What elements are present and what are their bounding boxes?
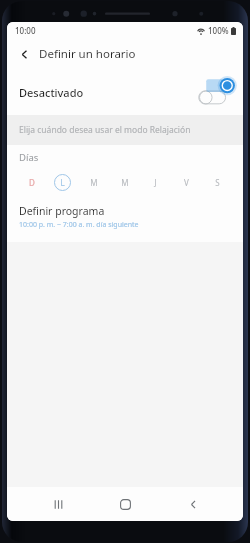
staticText: 10:00 p. m. ~ 7:00 a. m. día siguiente [19, 220, 139, 230]
staticText: M [121, 177, 129, 188]
button[interactable]: Activar horario [197, 76, 239, 108]
button[interactable]: Definir programa [7, 195, 243, 242]
button[interactable]: J [140, 170, 171, 194]
staticText: L [60, 177, 65, 188]
staticText: 100% [208, 25, 229, 36]
button[interactable]: V [171, 170, 202, 194]
button[interactable]: Back [13, 43, 35, 65]
staticText: M [90, 177, 98, 188]
button[interactable]: L [47, 170, 78, 194]
staticText: J [154, 177, 157, 188]
staticText: Desactivado [19, 85, 84, 100]
staticText: Días [19, 151, 39, 164]
staticText: Definir un horario [39, 46, 136, 62]
button[interactable]: Recents [41, 487, 75, 521]
staticText: V [184, 177, 189, 188]
staticText: D [29, 177, 35, 188]
button[interactable]: Desactivado [7, 69, 243, 115]
button[interactable]: S [202, 170, 233, 194]
button[interactable]: Home [108, 487, 142, 521]
button[interactable]: D [17, 170, 47, 194]
button[interactable]: M [109, 170, 140, 194]
staticText: 10:00 [15, 25, 36, 36]
button[interactable]: M [78, 170, 109, 194]
button[interactable]: Back [176, 487, 210, 521]
staticText: S [215, 177, 220, 188]
staticText: Elija cuándo desea usar el modo Relajaci… [19, 124, 191, 136]
staticText: Definir programa [19, 204, 105, 218]
